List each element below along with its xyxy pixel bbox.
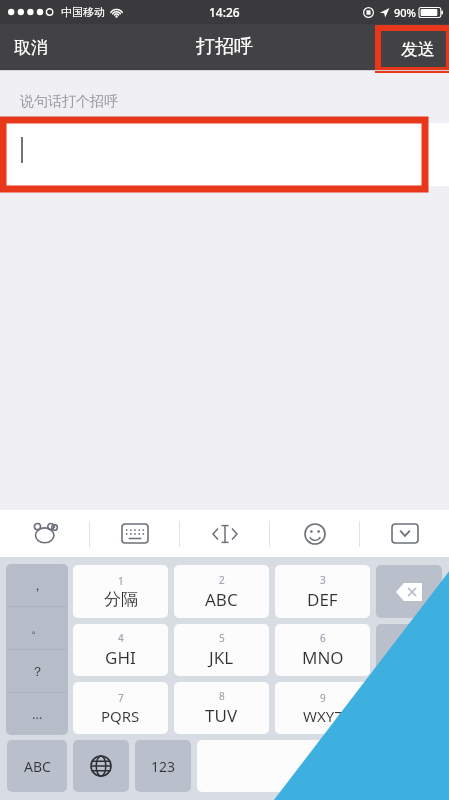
staticText: 4 — [118, 631, 124, 645]
staticText: 6 — [320, 631, 326, 645]
staticText: 3 — [320, 573, 326, 587]
button[interactable]: 1 — [73, 565, 168, 618]
button[interactable]: 取消 — [0, 24, 62, 70]
button[interactable]: 9 — [275, 682, 370, 734]
button[interactable]: Language — [73, 740, 129, 792]
button[interactable]: 3 — [275, 565, 370, 618]
button[interactable]: ABC — [7, 740, 67, 792]
button[interactable]: 7 — [73, 682, 168, 734]
staticText: 1 — [118, 574, 124, 588]
button[interactable]: ？ — [6, 650, 68, 692]
button[interactable]: 发送 — [378, 28, 449, 70]
button[interactable]: Keyboard layout — [90, 510, 179, 557]
staticText: 换行 — [393, 640, 425, 660]
staticText: WXYZ — [303, 706, 343, 726]
staticText: 发送 — [401, 39, 435, 60]
button[interactable]: 6 — [275, 624, 370, 676]
button[interactable]: Delete — [376, 565, 442, 618]
staticText: 90% — [394, 5, 416, 20]
button[interactable]: ， — [6, 564, 68, 606]
staticText: 。 — [31, 620, 44, 636]
staticText: 取消 — [14, 37, 48, 58]
button[interactable]: … — [6, 693, 68, 735]
staticText: 说句话打个招呼 — [20, 93, 118, 111]
staticText: MNO — [302, 646, 344, 669]
button[interactable] — [0, 123, 449, 186]
button[interactable]: Move cursor — [180, 510, 269, 557]
button[interactable]: Hide keyboard — [360, 510, 449, 557]
button[interactable]: Space — [197, 740, 442, 792]
staticText: ABC — [205, 588, 238, 611]
staticText: 2 — [219, 573, 225, 587]
staticText: TUV — [205, 704, 238, 727]
staticText: 14:26 — [209, 4, 240, 20]
button[interactable]: 5 — [174, 624, 269, 676]
staticText: DEF — [307, 588, 338, 611]
button[interactable]: 2 — [174, 565, 269, 618]
staticText: 分隔 — [104, 589, 138, 610]
button[interactable]: 换行 — [376, 624, 442, 676]
staticText: 7 — [118, 691, 124, 705]
staticText: 8 — [219, 689, 225, 703]
staticText: ， — [31, 577, 44, 593]
button[interactable]: Emoji — [270, 510, 359, 557]
staticText: … — [32, 705, 43, 723]
button[interactable]: 8 — [174, 682, 269, 734]
staticText: 5 — [219, 631, 225, 645]
button[interactable]: Baidu input — [0, 510, 89, 557]
staticText: 打招呼 — [196, 35, 253, 59]
staticText: 123 — [151, 757, 176, 776]
button[interactable]: 123 — [135, 740, 191, 792]
staticText: PQRS — [101, 706, 140, 726]
staticText: ？ — [31, 663, 44, 679]
staticText: JKL — [209, 646, 234, 669]
staticText: 中国移动 — [61, 5, 105, 19]
staticText: GHI — [105, 646, 136, 669]
staticText: 9 — [320, 691, 326, 705]
button[interactable]: 4 — [73, 624, 168, 676]
staticText: ABC — [24, 757, 51, 776]
